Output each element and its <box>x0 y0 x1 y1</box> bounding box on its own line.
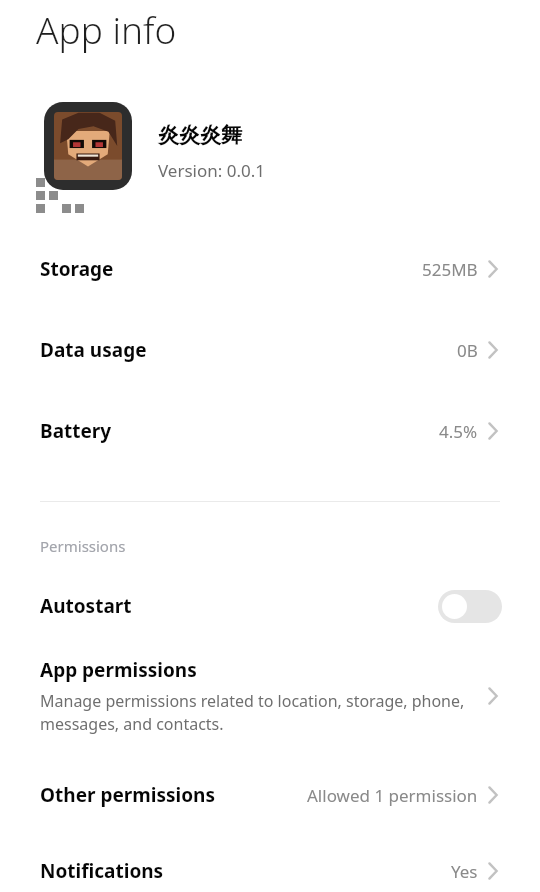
button[interactable]: Notifications <box>0 850 540 892</box>
staticText: Allowed 1 permission <box>307 784 478 807</box>
button[interactable]: Autostart <box>0 579 540 633</box>
button[interactable]: Battery <box>0 400 540 462</box>
button[interactable]: Storage <box>0 238 540 300</box>
staticText: 炎炎炎舞 <box>158 122 242 148</box>
button[interactable]: Other permissions <box>0 767 540 823</box>
other: Autostart toggle, off <box>438 590 502 623</box>
staticText: Version: 0.0.1 <box>158 159 266 182</box>
staticText: Other permissions <box>40 782 215 808</box>
staticText: Permissions <box>40 536 126 556</box>
staticText: Manage permissions related to location, … <box>40 690 476 735</box>
staticText: App permissions <box>40 657 197 683</box>
staticText: Notifications <box>40 858 164 884</box>
button[interactable]: App permissions <box>0 653 540 739</box>
staticText: Yes <box>451 860 478 883</box>
staticText: Autostart <box>40 593 132 619</box>
staticText: Storage <box>40 256 114 282</box>
button[interactable]: Data usage <box>0 319 540 381</box>
staticText: 4.5% <box>439 420 478 443</box>
staticText: 0B <box>457 339 478 362</box>
staticText: Battery <box>40 418 112 444</box>
staticText: App info <box>36 4 177 54</box>
staticText: Data usage <box>40 337 147 363</box>
staticText: 525MB <box>422 258 478 281</box>
